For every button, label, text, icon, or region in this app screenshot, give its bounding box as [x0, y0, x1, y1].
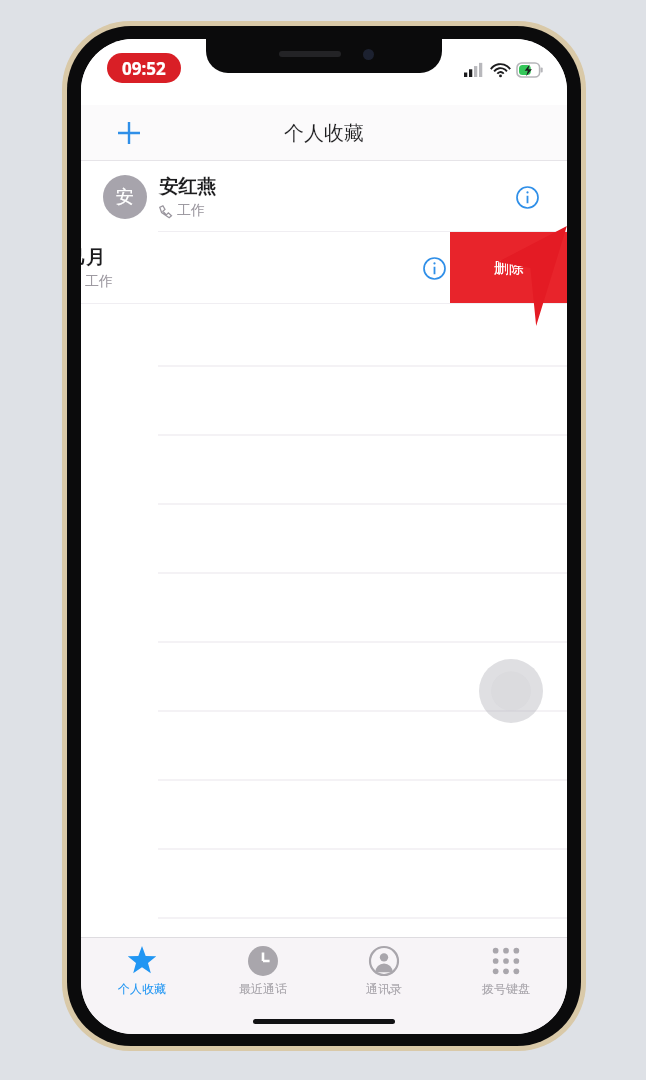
button[interactable]: Delete	[450, 232, 567, 304]
button[interactable]: 最近通话	[202, 938, 323, 1008]
staticText: 个人收藏	[284, 121, 364, 146]
staticText: 最近通话	[239, 981, 287, 996]
button[interactable]: 拨号键盘	[445, 938, 567, 1008]
staticText: 安红燕	[159, 175, 216, 199]
staticText: 个人收藏	[118, 981, 166, 996]
staticText: 拨号键盘	[482, 981, 530, 996]
button[interactable]: 安	[81, 161, 567, 232]
button[interactable]: 通讯录	[323, 938, 445, 1008]
staticText: 通讯录	[366, 981, 402, 996]
staticText: 09:52	[122, 57, 166, 80]
button[interactable]: Info	[507, 177, 547, 217]
staticText: 工作	[177, 202, 205, 220]
staticText: 删除	[494, 259, 524, 278]
button[interactable]: Add	[107, 111, 151, 155]
staticText: 安	[116, 186, 134, 209]
button[interactable]: 个人收藏	[81, 938, 202, 1008]
button[interactable]: Info	[414, 248, 454, 288]
staticText: 己月	[81, 246, 105, 270]
staticText: 工作	[85, 273, 113, 291]
